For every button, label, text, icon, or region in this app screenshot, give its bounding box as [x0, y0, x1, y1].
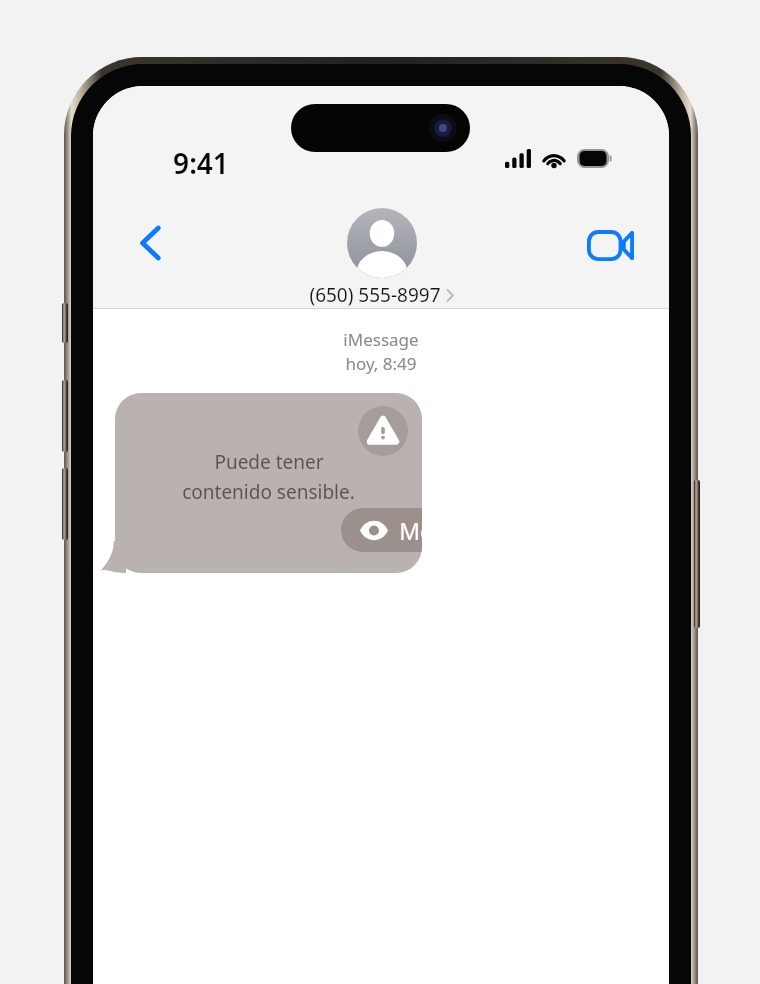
button[interactable]: (650) 555-8997	[309, 208, 454, 308]
staticText: hoy, 8:49	[345, 352, 417, 375]
staticText: contenido sensible.	[182, 479, 355, 505]
staticText: Puede tener	[214, 449, 324, 475]
button[interactable]: Puede tener	[115, 393, 422, 573]
button[interactable]: FaceTime video call	[579, 214, 641, 276]
staticText: Mostrar	[399, 515, 422, 546]
staticText: (650) 555-8997	[309, 282, 441, 308]
staticText: iMessage	[343, 328, 419, 351]
button[interactable]: Back	[121, 214, 179, 272]
button[interactable]: Mostrar	[341, 508, 422, 552]
staticText: 9:41	[173, 144, 229, 182]
